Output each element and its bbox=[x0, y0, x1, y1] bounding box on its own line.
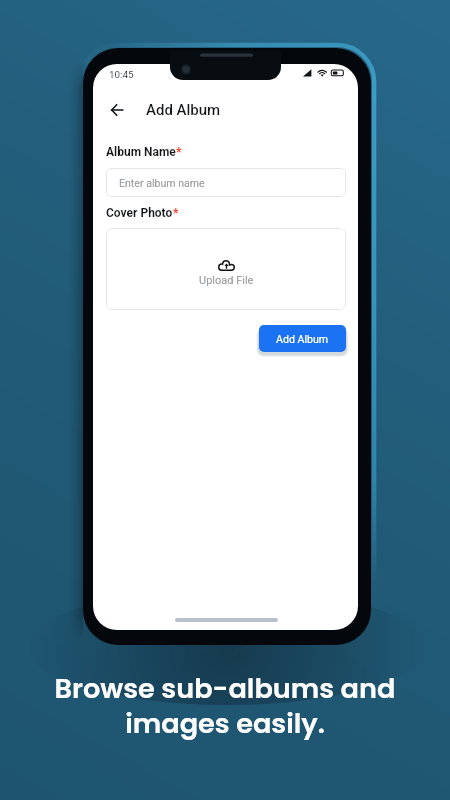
staticText: * bbox=[173, 206, 179, 220]
button[interactable]: Enter album name bbox=[106, 168, 346, 197]
staticText: Upload File bbox=[199, 274, 254, 287]
staticText: Add Album bbox=[146, 101, 221, 119]
staticText: Enter album name bbox=[119, 177, 205, 189]
button[interactable]: Back bbox=[103, 96, 131, 124]
button[interactable]: Upload File bbox=[106, 228, 346, 310]
staticText: 10:45 bbox=[109, 69, 134, 80]
staticText: Add Album bbox=[276, 333, 329, 345]
staticText: Cover Photo bbox=[106, 206, 173, 220]
button[interactable]: Add Album bbox=[259, 325, 346, 352]
staticText: Browse sub-albums and images easily. bbox=[0, 669, 450, 743]
staticText: Album Name bbox=[106, 145, 176, 159]
staticText: * bbox=[176, 145, 182, 159]
